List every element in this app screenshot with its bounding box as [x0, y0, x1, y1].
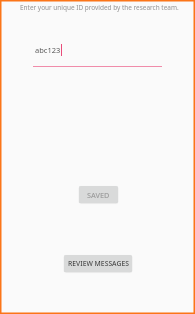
staticText: Enter your unique ID provided by the res…: [20, 3, 179, 12]
button[interactable]: Participant ID text field: [33, 38, 162, 68]
button[interactable]: REVIEW MESSAGES: [64, 255, 132, 272]
button[interactable]: SAVED: [79, 186, 118, 203]
staticText: SAVED: [87, 190, 110, 200]
staticText: abc123: [35, 45, 61, 55]
staticText: REVIEW MESSAGES: [68, 259, 129, 268]
